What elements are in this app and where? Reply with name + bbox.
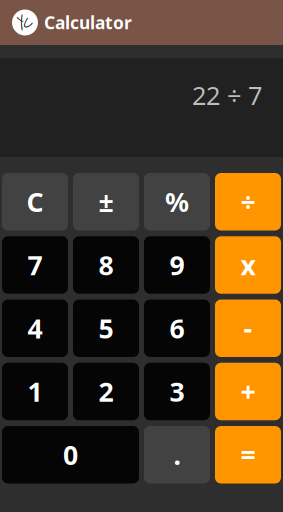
staticText: 7: [27, 247, 42, 283]
staticText: 22 ÷ 7: [192, 78, 262, 112]
staticText: 9: [169, 247, 184, 283]
button[interactable]: C: [2, 173, 68, 230]
button[interactable]: 5: [73, 299, 139, 357]
staticText: 5: [98, 310, 113, 346]
staticText: .: [173, 437, 180, 472]
button[interactable]: 0: [2, 426, 139, 483]
staticText: -: [243, 310, 252, 346]
button[interactable]: 9: [144, 236, 210, 294]
staticText: ÷: [240, 184, 255, 219]
staticText: =: [240, 437, 255, 472]
button[interactable]: x: [215, 236, 281, 294]
staticText: YC: [17, 12, 33, 32]
button[interactable]: 4: [2, 299, 68, 357]
staticText: ±: [98, 184, 113, 219]
staticText: 8: [98, 247, 113, 283]
staticText: 6: [169, 310, 184, 346]
staticText: Calculator: [44, 11, 132, 34]
staticText: 2: [98, 374, 113, 409]
staticText: 0: [63, 437, 78, 472]
staticText: +: [240, 374, 255, 409]
button[interactable]: .: [144, 426, 210, 483]
button[interactable]: -: [215, 299, 281, 357]
button[interactable]: 1: [2, 363, 68, 420]
button[interactable]: 7: [2, 236, 68, 294]
staticText: 4: [27, 310, 42, 346]
button[interactable]: 8: [73, 236, 139, 294]
button[interactable]: 3: [144, 363, 210, 420]
button[interactable]: ±: [73, 173, 139, 230]
staticText: 1: [27, 374, 42, 409]
button[interactable]: 2: [73, 363, 139, 420]
staticText: 3: [169, 374, 184, 409]
button[interactable]: ÷: [215, 173, 281, 230]
button[interactable]: =: [215, 426, 281, 483]
staticText: x: [240, 247, 255, 283]
button[interactable]: %: [144, 173, 210, 230]
staticText: %: [165, 184, 189, 219]
button[interactable]: 6: [144, 299, 210, 357]
staticText: C: [26, 184, 43, 219]
button[interactable]: +: [215, 363, 281, 420]
